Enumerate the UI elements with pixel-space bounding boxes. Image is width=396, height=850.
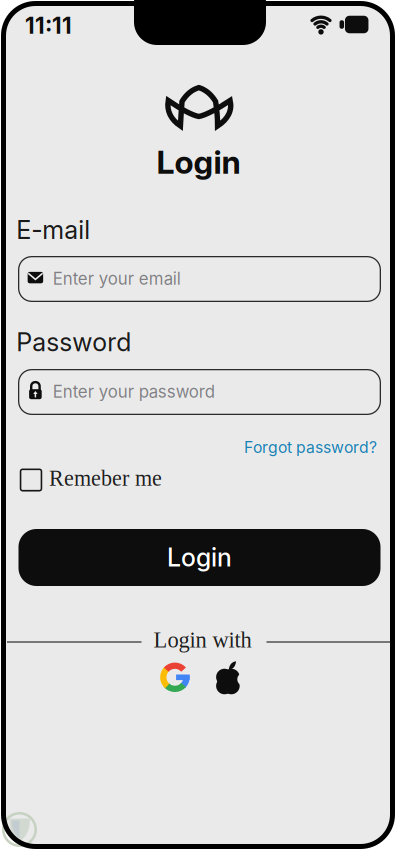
button[interactable]: Login with Apple — [0, 0, 396, 850]
staticText: Enter your password — [53, 381, 215, 402]
staticText: Enter your email — [53, 268, 181, 289]
staticText: Forgot password? — [244, 438, 377, 457]
staticText: Password — [16, 327, 131, 357]
button[interactable]: Login with Google — [0, 0, 396, 850]
button[interactable]: Login — [18, 529, 380, 586]
button[interactable]: Forgot password? — [217, 435, 377, 459]
staticText: Remeber me — [49, 466, 162, 491]
staticText: E-mail — [16, 215, 90, 245]
button[interactable]: Enter your email — [18, 256, 381, 302]
staticText: Login — [167, 542, 232, 573]
button[interactable]: Enter your password — [18, 369, 381, 415]
staticText: Login with — [153, 627, 251, 652]
staticText: Login — [157, 143, 241, 181]
button[interactable]: Remeber me — [19, 467, 169, 493]
staticText: 11:11 — [25, 12, 72, 39]
